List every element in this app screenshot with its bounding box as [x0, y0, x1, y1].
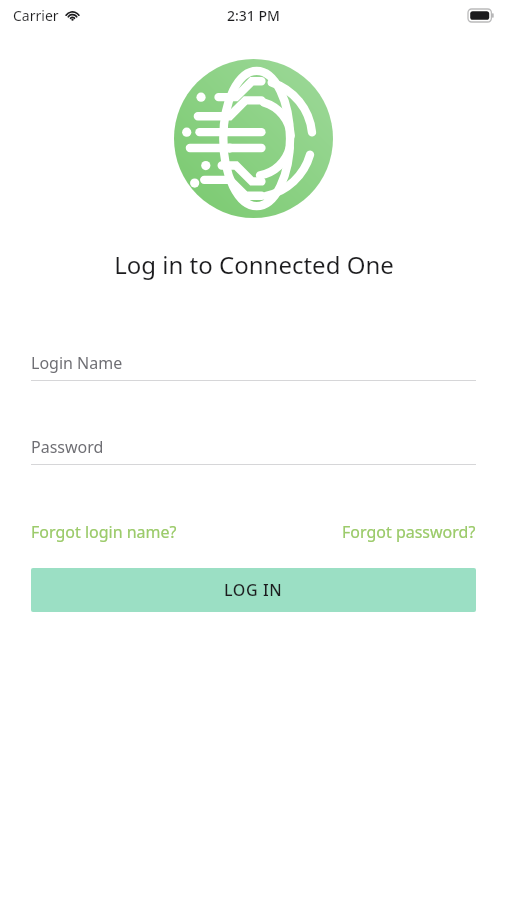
staticText: Carrier: [13, 6, 59, 25]
staticText: 2:31 PM: [227, 6, 280, 25]
staticText: Forgot login name?: [31, 521, 177, 543]
staticText: Forgot password?: [342, 521, 476, 543]
button[interactable]: Login Name: [31, 352, 476, 374]
button[interactable]: Password: [31, 436, 476, 458]
staticText: Log in to Connected One: [114, 248, 394, 281]
button[interactable]: Forgot password?: [342, 518, 476, 546]
button[interactable]: Forgot login name?: [31, 518, 177, 546]
staticText: Password: [31, 436, 104, 458]
staticText: Login Name: [31, 352, 123, 374]
button[interactable]: LOG IN: [31, 568, 476, 612]
staticText: LOG IN: [224, 579, 283, 601]
other: Connected One logo: [174, 59, 333, 218]
